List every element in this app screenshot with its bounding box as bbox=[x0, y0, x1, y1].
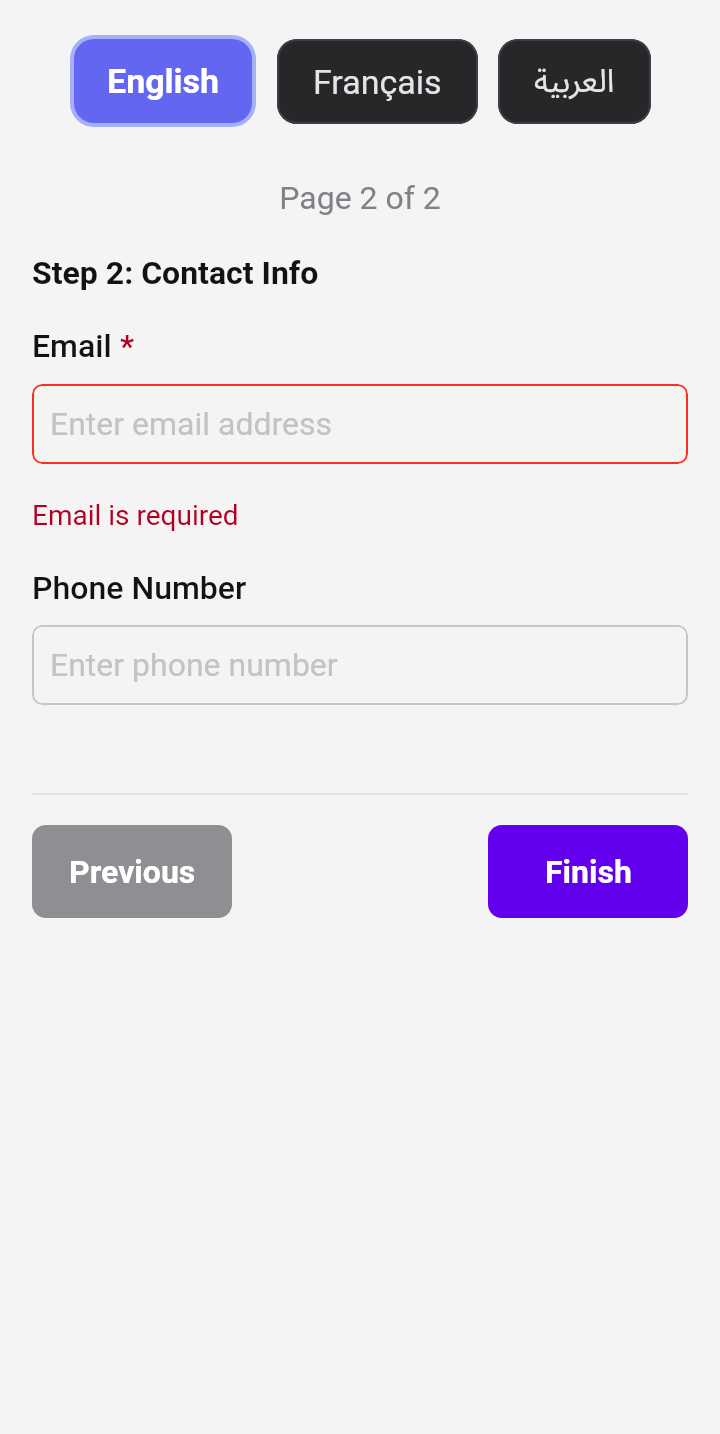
staticText: * bbox=[120, 327, 135, 365]
staticText: Enter email address bbox=[50, 405, 333, 443]
staticText: Phone Number bbox=[32, 569, 247, 607]
staticText: English bbox=[107, 61, 220, 101]
staticText: Email bbox=[32, 327, 120, 365]
staticText: العربية bbox=[534, 48, 615, 116]
staticText: Finish bbox=[545, 853, 632, 891]
button[interactable]: Enter phone number bbox=[32, 625, 688, 705]
button[interactable]: Enter email address bbox=[32, 384, 688, 464]
button[interactable]: Français bbox=[277, 39, 478, 124]
button[interactable]: العربية bbox=[498, 39, 651, 124]
button[interactable]: English bbox=[70, 35, 256, 127]
staticText: Page 2 of 2 bbox=[0, 179, 720, 217]
staticText: Step 2: Contact Info bbox=[32, 254, 319, 292]
staticText: Email is required bbox=[32, 499, 239, 532]
staticText: Previous bbox=[69, 853, 196, 891]
button[interactable]: Previous bbox=[32, 825, 232, 918]
staticText: Français bbox=[313, 62, 442, 102]
button[interactable]: Finish bbox=[488, 825, 688, 918]
staticText: Enter phone number bbox=[50, 646, 338, 684]
